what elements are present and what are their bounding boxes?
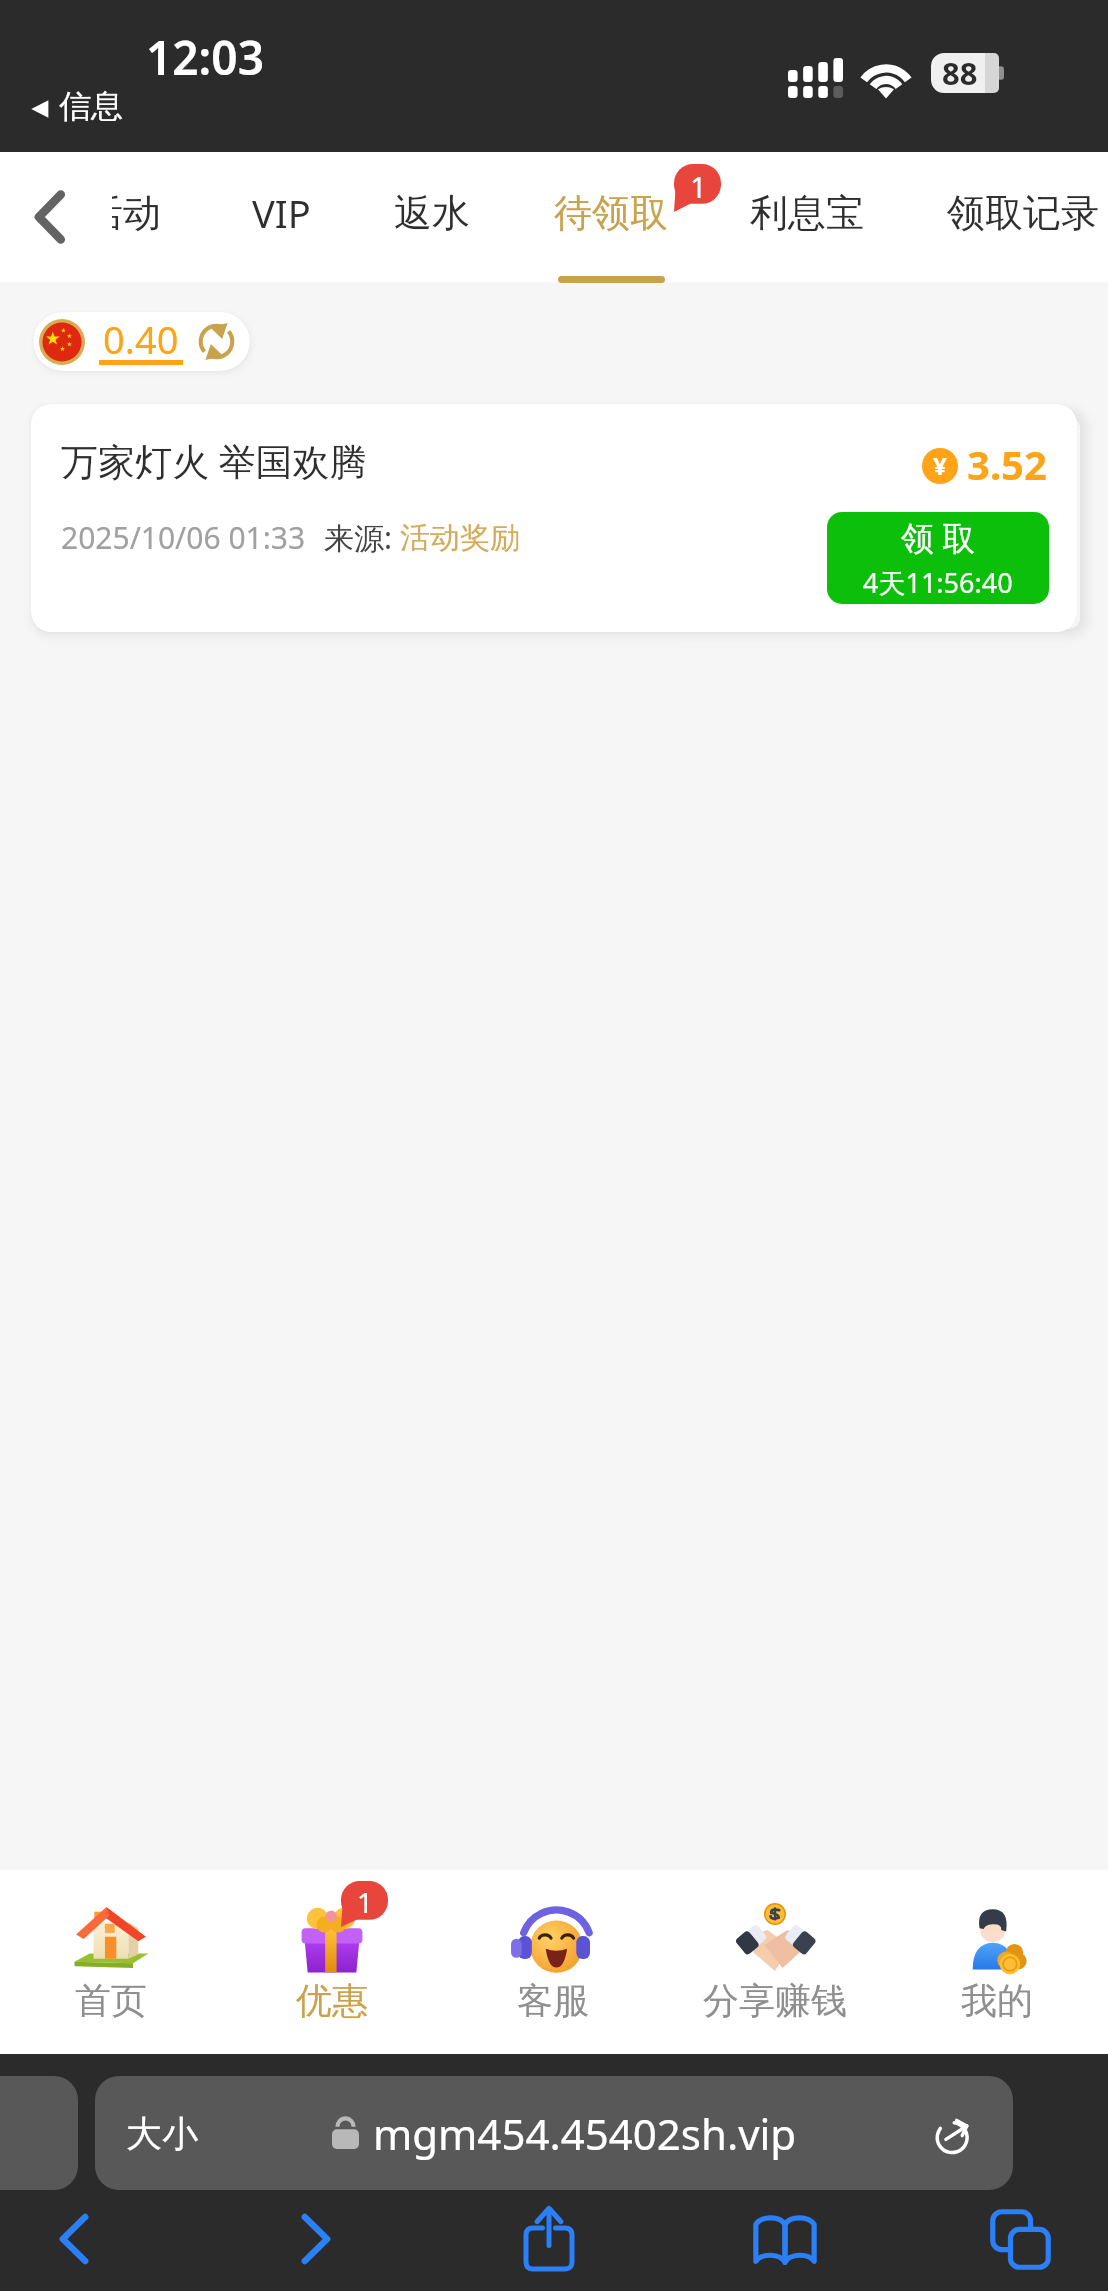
button[interactable]: 返水 [332,152,532,282]
staticText: 大小 [126,2111,198,2156]
button[interactable]: VIP [181,152,381,282]
staticText: 1 [357,1883,374,1921]
button[interactable]: Bookmarks [695,2190,875,2288]
staticText: 返水 [394,189,470,237]
staticText: 活动 [112,189,160,237]
staticText: 首页 [75,1978,147,2023]
staticText: 3.52 [967,437,1047,491]
staticText: 我的 [961,1978,1033,2023]
button[interactable]: Back [0,2190,164,2288]
button[interactable]: 首页 [0,1870,221,2054]
staticText: 利息宝 [750,189,864,237]
staticText: 2025/10/06 01:33 [61,517,306,558]
staticText: VIP [252,187,311,239]
button[interactable]: 客服 [442,1870,664,2054]
button[interactable]: 我的 [886,1870,1108,2054]
staticText: 待领取 [554,189,668,237]
staticText: 活动奖励 [400,519,520,557]
staticText: 分享赚钱 [703,1978,847,2023]
button[interactable]: 领取记录 [923,152,1108,282]
button[interactable]: 待领取 [511,152,711,282]
staticText: 领 取 [901,515,976,560]
button[interactable]: 万家灯火 举国欢腾 [31,404,1077,632]
staticText: 来源: [324,517,400,558]
staticText: 88 [942,52,978,92]
button[interactable]: Tabs [930,2190,1108,2288]
staticText: 1 [690,167,707,206]
staticText: 4天11:56:40 [863,564,1013,601]
staticText: 优惠 [296,1978,368,2023]
staticText: ¥ [933,449,947,482]
button[interactable]: 1 [221,1870,442,2054]
button[interactable]: 活动 [112,152,187,282]
button[interactable]: Share [459,2190,639,2288]
button[interactable]: 利息宝 [707,152,907,282]
staticText: 万家灯火 举国欢腾 [61,435,367,486]
staticText: 信息 [59,86,123,126]
staticText: 0.40 [103,313,179,365]
staticText: 领取记录 [947,189,1099,237]
button[interactable]: Back [8,152,92,282]
button[interactable]: 0.40 [33,312,250,371]
staticText: 12:03 [146,26,264,89]
button[interactable]: 分享赚钱 [664,1870,886,2054]
button[interactable]: Forward [226,2190,406,2288]
button[interactable]: Previous tab [0,2076,78,2190]
button[interactable]: 大小 [95,2076,1013,2190]
staticText: 客服 [517,1978,589,2023]
button[interactable]: 领 取 [827,512,1049,604]
staticText: mgm454.45402sh.vip [373,2105,797,2162]
